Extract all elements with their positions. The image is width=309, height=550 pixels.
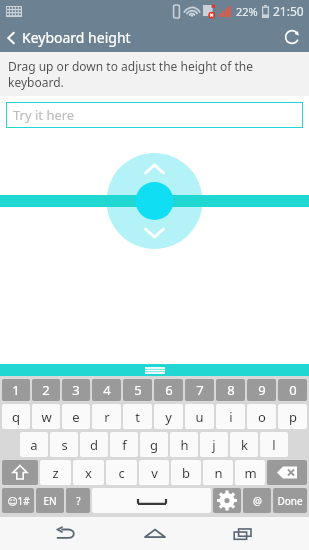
button[interactable]: w	[32, 404, 60, 429]
staticText: 3	[72, 381, 80, 399]
button[interactable]: j	[200, 432, 228, 457]
staticText: @	[253, 494, 262, 508]
staticText: t	[135, 408, 140, 426]
button[interactable]: f	[110, 432, 138, 457]
staticText: l	[272, 436, 276, 454]
staticText: 4	[103, 381, 111, 399]
staticText: 2	[42, 381, 50, 399]
button[interactable]: Backspace	[267, 460, 307, 485]
button[interactable]: t	[123, 404, 152, 429]
staticText: EN	[43, 494, 57, 508]
button[interactable]: 3	[62, 379, 90, 401]
staticText: m	[244, 464, 257, 482]
staticText: k	[241, 436, 248, 454]
staticText: e	[72, 408, 80, 426]
staticText: w	[41, 408, 52, 426]
button[interactable]: Settings	[213, 488, 241, 513]
button[interactable]: ☺1#	[2, 488, 34, 513]
staticText: q	[12, 408, 20, 426]
button[interactable]: 9	[247, 379, 276, 401]
staticText: p	[289, 408, 297, 426]
staticText: Try it here	[13, 106, 75, 124]
button[interactable]: a	[20, 432, 48, 457]
staticText: Done	[277, 494, 303, 508]
staticText: 0	[289, 381, 297, 399]
staticText: ?	[76, 494, 81, 508]
staticText: 6	[165, 381, 173, 399]
button[interactable]: Shift	[2, 460, 38, 485]
staticText: 8	[227, 381, 235, 399]
staticText: c	[118, 464, 125, 482]
staticText: 22%	[236, 4, 258, 19]
button[interactable]: Drag to adjust keyboard height	[107, 153, 203, 249]
staticText: b	[182, 464, 190, 482]
staticText: 7	[196, 381, 204, 399]
button[interactable]: x	[73, 460, 104, 485]
staticText: a	[30, 436, 38, 454]
button[interactable]: Space	[92, 488, 211, 513]
button[interactable]: 7	[185, 379, 214, 401]
button[interactable]: Try it here	[6, 102, 303, 128]
staticText: n	[214, 464, 223, 482]
button[interactable]: p	[278, 404, 307, 429]
staticText: i	[229, 408, 233, 426]
button[interactable]: o	[247, 404, 276, 429]
button[interactable]: b	[171, 460, 201, 485]
button[interactable]: 4	[92, 379, 121, 401]
button[interactable]: Done	[273, 488, 307, 513]
button[interactable]: Home	[133, 517, 177, 550]
staticText: j	[212, 436, 216, 454]
button[interactable]: 1	[2, 379, 30, 401]
button[interactable]: 6	[154, 379, 183, 401]
staticText: f	[122, 436, 127, 454]
button[interactable]: Back	[0, 28, 137, 47]
button[interactable]: z	[40, 460, 71, 485]
button[interactable]: e	[62, 404, 90, 429]
button[interactable]: d	[80, 432, 108, 457]
staticText: ☺1#	[7, 494, 30, 508]
button[interactable]: ?	[66, 488, 90, 513]
staticText: Drag up or down to adjust the height of …	[8, 58, 301, 90]
button[interactable]: s	[50, 432, 78, 457]
staticText: x	[85, 464, 92, 482]
button[interactable]: h	[170, 432, 198, 457]
button[interactable]: 0	[278, 379, 307, 401]
button[interactable]: Back	[44, 517, 88, 550]
button[interactable]: 8	[216, 379, 245, 401]
staticText: s	[61, 436, 68, 454]
button[interactable]: Keyboard drag handle	[0, 364, 309, 376]
staticText: 21:50	[273, 3, 304, 19]
button[interactable]: Recents	[221, 517, 265, 550]
button[interactable]: c	[106, 460, 137, 485]
staticText: Keyboard height	[22, 28, 131, 47]
staticText: y	[165, 408, 172, 426]
button[interactable]: y	[154, 404, 183, 429]
button[interactable]: g	[140, 432, 168, 457]
button[interactable]: n	[203, 460, 233, 485]
button[interactable]: 2	[32, 379, 60, 401]
staticText: h	[180, 436, 189, 454]
staticText: g	[150, 436, 158, 454]
button[interactable]: 5	[123, 379, 152, 401]
staticText: z	[52, 464, 59, 482]
staticText: 5	[134, 381, 142, 399]
button[interactable]: k	[230, 432, 258, 457]
button[interactable]: Reset	[275, 29, 309, 45]
staticText: r	[104, 408, 110, 426]
button[interactable]: @	[243, 488, 271, 513]
staticText: d	[90, 436, 98, 454]
button[interactable]: l	[260, 432, 288, 457]
button[interactable]: EN	[36, 488, 64, 513]
button[interactable]: v	[139, 460, 169, 485]
staticText: v	[151, 464, 158, 482]
other: Back	[6, 30, 16, 46]
button[interactable]: m	[235, 460, 265, 485]
button[interactable]: r	[92, 404, 121, 429]
button[interactable]: q	[2, 404, 30, 429]
staticText: 9	[258, 381, 266, 399]
staticText: 1	[12, 381, 20, 399]
button[interactable]: i	[216, 404, 245, 429]
staticText: o	[258, 408, 266, 426]
button[interactable]: u	[185, 404, 214, 429]
staticText: u	[195, 408, 204, 426]
